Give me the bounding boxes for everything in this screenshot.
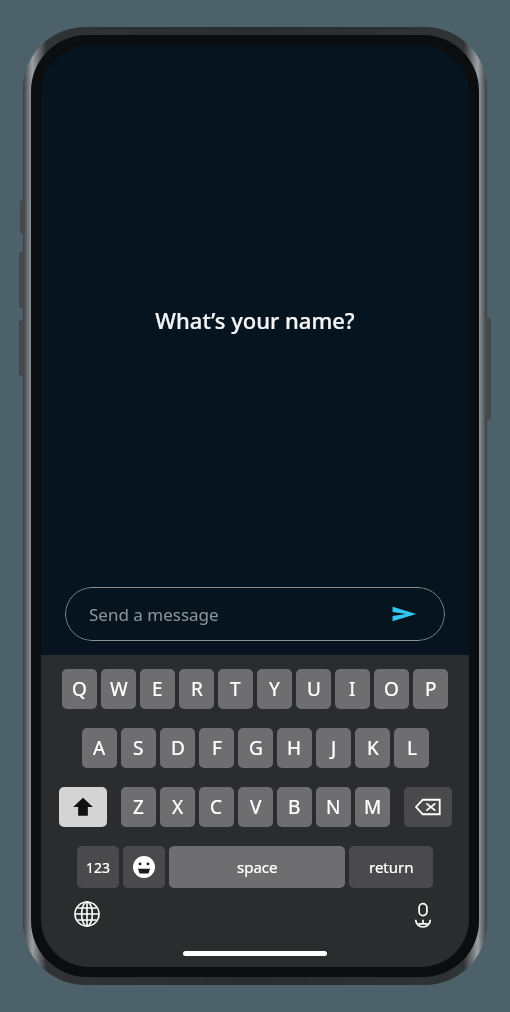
staticText: Z — [133, 794, 144, 820]
staticText: I — [349, 676, 356, 702]
button[interactable]: Emoji — [123, 846, 165, 888]
button[interactable]: C — [199, 787, 234, 827]
staticText: 123 — [86, 858, 111, 877]
staticText: Q — [72, 676, 87, 702]
button[interactable]: S — [121, 728, 156, 768]
staticText: R — [191, 676, 203, 702]
button[interactable]: Q — [62, 669, 97, 709]
button[interactable]: U — [296, 669, 331, 709]
button[interactable]: J — [316, 728, 351, 768]
button[interactable]: Send — [387, 597, 421, 631]
button[interactable]: Change keyboard language — [71, 898, 103, 930]
button[interactable]: return — [349, 846, 433, 888]
button[interactable]: 123 — [77, 846, 119, 888]
button[interactable]: M — [355, 787, 390, 827]
button[interactable]: I — [335, 669, 370, 709]
staticText: V — [250, 794, 262, 820]
button[interactable]: X — [160, 787, 195, 827]
staticText: What’s your name? — [155, 305, 355, 335]
staticText: G — [249, 735, 263, 761]
staticText: J — [331, 735, 337, 761]
button[interactable]: Z — [121, 787, 156, 827]
staticText: T — [230, 676, 241, 702]
staticText: P — [425, 676, 437, 702]
button[interactable]: L — [394, 728, 429, 768]
button[interactable]: B — [277, 787, 312, 827]
button[interactable]: E — [140, 669, 175, 709]
staticText: return — [369, 857, 414, 877]
staticText: K — [367, 735, 379, 761]
button[interactable]: space — [169, 846, 345, 888]
button[interactable]: P — [413, 669, 448, 709]
staticText: Y — [269, 676, 280, 702]
button[interactable]: W — [101, 669, 136, 709]
button[interactable]: R — [179, 669, 214, 709]
staticText: X — [172, 794, 184, 820]
staticText: B — [288, 794, 301, 820]
staticText: D — [171, 735, 185, 761]
staticText: M — [364, 794, 382, 820]
staticText: W — [110, 676, 128, 702]
staticText: C — [210, 794, 223, 820]
button[interactable]: Dictation — [407, 898, 439, 930]
button[interactable]: Y — [257, 669, 292, 709]
staticText: space — [237, 857, 278, 877]
staticText: S — [133, 735, 144, 761]
button[interactable]: G — [238, 728, 273, 768]
button[interactable]: A — [82, 728, 117, 768]
staticText: A — [93, 735, 106, 761]
button[interactable]: H — [277, 728, 312, 768]
staticText: U — [307, 676, 321, 702]
staticText: E — [152, 676, 163, 702]
button[interactable]: D — [160, 728, 195, 768]
staticText: F — [212, 735, 222, 761]
button[interactable]: F — [199, 728, 234, 768]
staticText: O — [384, 676, 399, 702]
staticText: L — [407, 735, 417, 761]
button[interactable]: T — [218, 669, 253, 709]
button[interactable]: V — [238, 787, 273, 827]
staticText: H — [287, 735, 302, 761]
staticText: Send a message — [89, 603, 387, 626]
button[interactable]: Shift — [59, 787, 107, 827]
button[interactable]: O — [374, 669, 409, 709]
button[interactable]: Send a message — [65, 587, 445, 641]
button[interactable]: K — [355, 728, 390, 768]
staticText: N — [326, 794, 341, 820]
button[interactable]: N — [316, 787, 351, 827]
button[interactable]: Backspace — [404, 787, 452, 827]
